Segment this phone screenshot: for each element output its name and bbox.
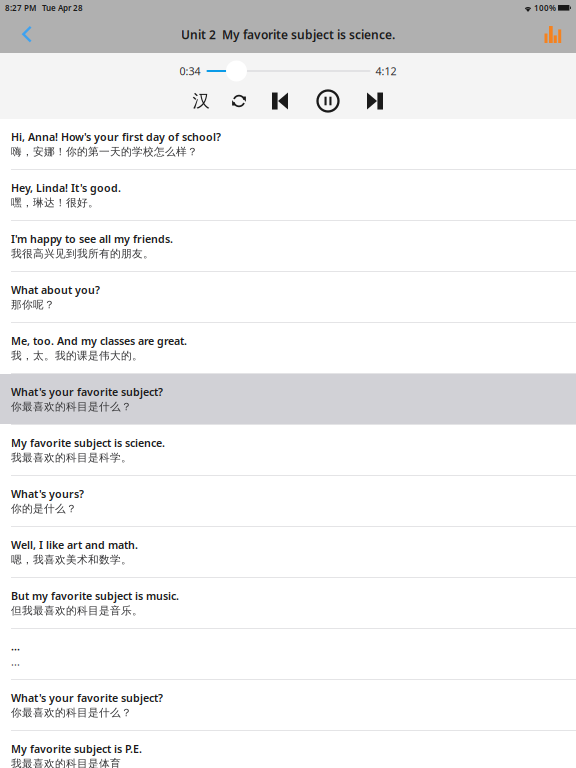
staticText: ...	[11, 639, 20, 653]
button[interactable]: I'm happy to see all my friends.	[0, 221, 576, 271]
staticText: 我最喜欢的科目是体育	[11, 757, 121, 768]
staticText: 但我最喜欢的科目是音乐。	[11, 604, 143, 617]
button[interactable]: Pause	[308, 86, 348, 116]
staticText: I'm happy to see all my friends.	[11, 232, 173, 246]
staticText: Well, I like art and math.	[11, 538, 138, 552]
staticText: 那你呢？	[11, 298, 55, 311]
staticText: Me, too. And my classes are great.	[11, 334, 187, 348]
staticText: Hey, Linda! It's good.	[11, 181, 121, 195]
button[interactable]: Me, too. And my classes are great.	[0, 323, 576, 373]
button[interactable]: What's yours?	[0, 476, 576, 526]
staticText: 我最喜欢的科目是科学。	[11, 451, 132, 464]
button[interactable]: Repeat	[222, 86, 256, 116]
staticText: Unit 2 My favorite subject is science.	[181, 26, 395, 42]
button[interactable]: My favorite subject is science.	[0, 425, 576, 475]
staticText: Hi, Anna! How's your first day of school…	[11, 130, 221, 144]
button[interactable]: What's your favorite subject?	[0, 680, 576, 730]
button[interactable]: What's your favorite subject?	[0, 374, 576, 424]
staticText: What about you?	[11, 283, 100, 297]
button[interactable]: Previous	[262, 86, 298, 116]
button[interactable]: Back	[10, 16, 44, 53]
staticText: ...	[11, 654, 20, 669]
staticText: What's yours?	[11, 487, 84, 501]
button[interactable]: Next	[357, 86, 393, 116]
staticText: 0:34	[179, 64, 200, 78]
button[interactable]: My favorite subject is P.E.	[0, 731, 576, 768]
staticText: 100%	[532, 3, 558, 13]
staticText: 汉	[192, 90, 209, 112]
staticText: 嗯，我喜欢美术和数学。	[11, 553, 132, 566]
staticText: My favorite subject is P.E.	[11, 742, 142, 756]
button[interactable]: What about you?	[0, 272, 576, 322]
staticText: What's your favorite subject?	[11, 385, 163, 399]
button[interactable]: Hey, Linda! It's good.	[0, 170, 576, 220]
staticText: 我，太。我的课是伟大的。	[11, 349, 143, 362]
staticText: What's your favorite subject?	[11, 691, 163, 705]
button[interactable]: Statistics	[536, 16, 570, 53]
button[interactable]: But my favorite subject is music.	[0, 578, 576, 628]
button[interactable]: Well, I like art and math.	[0, 527, 576, 577]
staticText: 嗨，安娜！你的第一天的学校怎么样？	[11, 145, 198, 158]
button[interactable]: Chinese	[183, 86, 219, 116]
staticText: 4:12	[375, 64, 396, 78]
staticText: 8:27 PM Tue Apr 28	[5, 3, 83, 13]
staticText: But my favorite subject is music.	[11, 589, 179, 603]
staticText: 我很高兴见到我所有的朋友。	[11, 247, 154, 260]
button[interactable]: ...	[0, 629, 576, 679]
button[interactable]: Hi, Anna! How's your first day of school…	[0, 119, 576, 169]
staticText: 你的是什么？	[11, 502, 77, 515]
staticText: My favorite subject is science.	[11, 436, 165, 450]
staticText: 你最喜欢的科目是什么？	[11, 706, 132, 719]
staticText: 嘿，琳达！很好。	[11, 196, 99, 209]
staticText: 你最喜欢的科目是什么？	[11, 400, 132, 413]
